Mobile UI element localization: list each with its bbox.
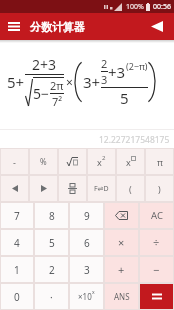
- button[interactable]: 2: [34, 256, 69, 283]
- button[interactable]: 9: [69, 202, 104, 229]
- button[interactable]: [58, 175, 87, 202]
- staticText: (2−π): [126, 60, 148, 72]
- staticText: F⇌D: [94, 184, 109, 194]
- staticText: π: [157, 156, 163, 168]
- staticText: +: [118, 262, 125, 277]
- staticText: 2: [102, 154, 106, 162]
- staticText: 12.227217548175: [99, 134, 170, 146]
- button[interactable]: (: [116, 175, 145, 202]
- button[interactable]: x: [116, 148, 145, 175]
- staticText: ÷: [153, 235, 160, 250]
- staticText: ×10: [78, 291, 92, 302]
- button[interactable]: +: [104, 256, 139, 283]
- staticText: 8: [49, 209, 55, 223]
- staticText: 5+: [7, 72, 25, 92]
- staticText: +3: [108, 62, 126, 82]
- button[interactable]: [58, 148, 87, 175]
- button[interactable]: [139, 283, 174, 310]
- staticText: 5: [120, 88, 129, 108]
- staticText: ): [158, 183, 161, 195]
- button[interactable]: 3: [69, 256, 104, 283]
- button[interactable]: ×10: [69, 283, 104, 310]
- button[interactable]: ÷: [139, 229, 174, 256]
- button[interactable]: 6: [69, 229, 104, 256]
- staticText: x: [92, 289, 95, 296]
- staticText: 1: [14, 263, 20, 277]
- staticText: ·: [50, 290, 53, 304]
- button[interactable]: 1: [0, 256, 34, 283]
- button[interactable]: [0, 13, 27, 40]
- staticText: 100%: [126, 2, 144, 12]
- button[interactable]: %: [29, 148, 58, 175]
- staticText: 2+3: [32, 55, 57, 74]
- staticText: %: [40, 156, 47, 167]
- staticText: AC: [151, 209, 163, 222]
- button[interactable]: [140, 13, 174, 40]
- button[interactable]: 0: [0, 283, 34, 310]
- staticText: 5: [49, 236, 55, 250]
- staticText: 6: [84, 236, 90, 250]
- staticText: 7: [14, 209, 20, 223]
- staticText: (: [129, 183, 132, 195]
- button[interactable]: 5: [34, 229, 69, 256]
- staticText: ×: [118, 235, 125, 250]
- staticText: 分数计算器: [30, 20, 85, 34]
- button[interactable]: [29, 175, 58, 202]
- staticText: 3: [101, 72, 108, 87]
- button[interactable]: 7: [0, 202, 34, 229]
- staticText: 3: [84, 263, 90, 277]
- staticText: 4: [14, 236, 20, 250]
- staticText: 00:56: [153, 2, 171, 12]
- staticText: 0: [14, 290, 20, 304]
- staticText: 2: [101, 56, 108, 71]
- button[interactable]: −: [139, 256, 174, 283]
- staticText: 2: [49, 263, 55, 277]
- staticText: 9: [84, 209, 90, 223]
- button[interactable]: F⇌D: [87, 175, 116, 202]
- staticText: ×: [66, 74, 73, 90]
- button[interactable]: 8: [34, 202, 69, 229]
- button[interactable]: AC: [139, 202, 174, 229]
- button[interactable]: ·: [34, 283, 69, 310]
- staticText: 2π: [50, 78, 64, 93]
- button[interactable]: π: [145, 148, 174, 175]
- staticText: 5−: [33, 84, 50, 103]
- button[interactable]: -: [0, 148, 29, 175]
- button[interactable]: 4: [0, 229, 34, 256]
- staticText: x: [97, 156, 102, 168]
- staticText: x: [126, 156, 131, 168]
- button[interactable]: [104, 202, 139, 229]
- staticText: ANS: [114, 291, 130, 302]
- staticText: 3+: [83, 72, 101, 92]
- button[interactable]: ANS: [104, 283, 139, 310]
- button[interactable]: ×: [104, 229, 139, 256]
- button[interactable]: ): [145, 175, 174, 202]
- button[interactable]: x: [87, 148, 116, 175]
- staticText: −: [153, 262, 160, 277]
- button[interactable]: [0, 175, 29, 202]
- staticText: 7²: [52, 94, 63, 109]
- staticText: -: [13, 156, 16, 168]
